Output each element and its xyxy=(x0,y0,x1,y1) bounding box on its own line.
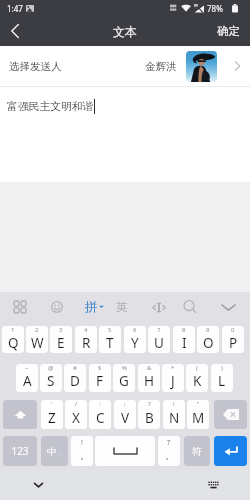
button[interactable]: 8 xyxy=(173,326,195,353)
staticText: ) xyxy=(221,364,223,372)
staticText: 0 xyxy=(231,326,235,334)
button[interactable]: Emoji xyxy=(41,292,73,322)
staticText: G xyxy=(119,372,129,390)
staticText: 4 xyxy=(84,326,88,334)
button[interactable]: Collapse keyboard xyxy=(210,292,246,322)
button[interactable]: ) xyxy=(211,364,233,392)
staticText: S xyxy=(47,372,55,390)
button[interactable]: 7 xyxy=(148,326,170,353)
staticText: ' xyxy=(51,400,53,408)
button[interactable]: * xyxy=(162,364,184,392)
staticText: 拼 xyxy=(85,299,98,315)
staticText: 选择发送人 xyxy=(9,60,62,73)
staticText: 1 xyxy=(11,326,15,334)
staticText: Z xyxy=(48,409,56,427)
button[interactable]: Hide keyboard xyxy=(28,475,48,495)
button[interactable]: Back xyxy=(2,16,28,46)
staticText: % xyxy=(122,364,127,372)
staticText: 文本 xyxy=(113,24,137,39)
staticText: P xyxy=(229,334,238,352)
button[interactable]: Search xyxy=(174,292,206,322)
staticText: Q xyxy=(8,334,19,352)
button[interactable]: Shift xyxy=(3,400,37,429)
button[interactable]: " xyxy=(187,400,209,429)
button[interactable]: 6 xyxy=(124,326,146,353)
staticText: 1:47 xyxy=(7,3,23,14)
staticText: 中 xyxy=(47,445,57,458)
staticText: 符 xyxy=(192,445,202,458)
staticText: ! xyxy=(81,438,83,448)
button[interactable]: 拼 xyxy=(78,292,110,322)
staticText: 。 xyxy=(165,450,174,461)
button[interactable]: / xyxy=(65,400,87,429)
staticText: F xyxy=(96,372,104,390)
button[interactable]: ' xyxy=(41,400,63,429)
staticText: * xyxy=(171,364,175,372)
button[interactable]: 中 xyxy=(41,436,68,466)
staticText: / xyxy=(75,400,78,408)
button[interactable]: 3 xyxy=(50,326,72,353)
button[interactable]: 选择发送人 xyxy=(0,46,250,86)
button[interactable]: Keyboard layouts xyxy=(3,292,37,322)
staticText: ; xyxy=(124,400,126,408)
button[interactable]: Switch keyboard xyxy=(203,475,223,495)
staticText: X xyxy=(72,409,80,427)
button[interactable]: 1 xyxy=(2,326,24,353)
staticText: 5 xyxy=(108,326,112,334)
button[interactable]: 4 xyxy=(75,326,97,353)
button[interactable]: : xyxy=(89,400,111,429)
button[interactable]: ! xyxy=(163,400,185,429)
staticText: U xyxy=(154,334,164,352)
button[interactable]: Backspace xyxy=(214,400,247,429)
button[interactable]: ( xyxy=(186,364,208,392)
button[interactable]: 9 xyxy=(197,326,219,353)
staticText: T xyxy=(106,334,114,352)
staticText: M xyxy=(192,409,205,427)
button[interactable]: @ xyxy=(40,364,62,392)
staticText: D xyxy=(70,372,80,390)
button[interactable]: ! xyxy=(71,436,93,466)
staticText: 2 xyxy=(35,326,39,334)
button[interactable]: $ xyxy=(89,364,111,392)
button[interactable]: # xyxy=(64,364,86,392)
staticText: Y xyxy=(131,334,139,352)
staticText: H xyxy=(144,372,155,390)
staticText: ? xyxy=(148,400,151,408)
staticText: 123 xyxy=(11,444,29,458)
staticText: 3 xyxy=(59,326,63,334)
staticText: ? xyxy=(167,438,171,448)
staticText: 78% xyxy=(207,3,223,14)
button[interactable]: 5 xyxy=(99,326,121,353)
button[interactable]: 确定 xyxy=(217,16,240,46)
button[interactable]: Move cursor xyxy=(143,292,175,322)
staticText: C xyxy=(96,409,105,427)
button[interactable]: ? xyxy=(138,400,160,429)
button[interactable]: & xyxy=(138,364,160,392)
staticText: N xyxy=(169,409,180,427)
staticText: # xyxy=(73,364,77,372)
staticText: @ xyxy=(48,364,54,372)
staticText: 英 xyxy=(116,300,128,314)
button[interactable]: 2 xyxy=(26,326,48,353)
staticText: R xyxy=(82,334,91,352)
button[interactable]: 英 xyxy=(108,292,136,322)
staticText: ! xyxy=(173,400,175,408)
staticText: 6 xyxy=(133,326,137,334)
button[interactable]: Space xyxy=(95,436,155,466)
staticText: O xyxy=(203,334,214,352)
button[interactable]: Enter xyxy=(214,436,247,466)
staticText: 9 xyxy=(206,326,210,334)
staticText: & xyxy=(147,364,152,372)
button[interactable]: 123 xyxy=(3,436,37,466)
staticText: L xyxy=(218,372,226,390)
button[interactable]: ? xyxy=(158,436,180,466)
staticText: , xyxy=(81,449,84,461)
button[interactable]: % xyxy=(113,364,135,392)
staticText: 金辉洪 xyxy=(145,60,177,73)
button[interactable]: 0 xyxy=(222,326,244,353)
staticText: K xyxy=(193,372,202,390)
button[interactable]: 符 xyxy=(184,436,210,466)
button[interactable]: ~ xyxy=(16,364,38,392)
button[interactable]: ; xyxy=(114,400,136,429)
